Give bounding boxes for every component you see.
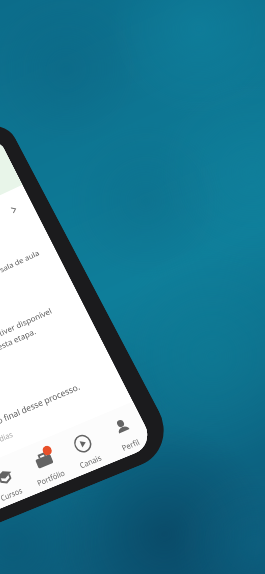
staticText: Cursos (0, 484, 24, 502)
staticText: Parabéns! Você concluiu esta etapa do pr… (0, 164, 5, 230)
button[interactable]: Portfólio (17, 434, 74, 495)
button[interactable]: Etapa concluída (0, 143, 10, 254)
staticText: Registro da sua experiência em sala de a… (0, 247, 48, 331)
staticText: Encerra em 120 dias (0, 429, 15, 466)
button[interactable]: Cursos (0, 450, 35, 511)
button[interactable]: Avaliação prática (0, 190, 27, 289)
staticText: Canais (78, 452, 103, 470)
staticText: Perfil (120, 436, 142, 452)
staticText: Portfólio (35, 467, 67, 487)
button[interactable]: Perfil (94, 401, 155, 462)
staticText: Realize o projeto final desse processo. (0, 381, 82, 449)
button[interactable]: Prática supervisionada (0, 225, 52, 341)
button[interactable]: Feedback do tutor (0, 275, 86, 410)
staticText: Assim que o feedback estiver disponível … (0, 299, 74, 386)
button[interactable]: Projeto Final (0, 343, 118, 477)
button[interactable]: Canais (55, 418, 114, 478)
